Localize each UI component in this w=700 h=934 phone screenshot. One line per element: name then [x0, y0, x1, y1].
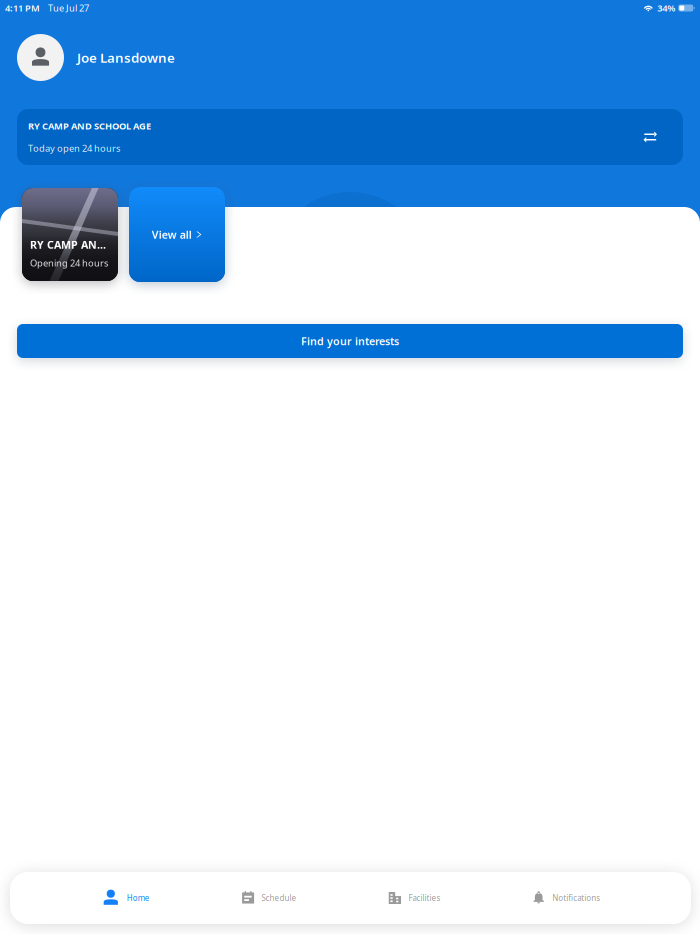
- button[interactable]: Schedule: [241, 872, 297, 924]
- staticText: Facilities: [408, 893, 440, 903]
- staticText: Find your interests: [301, 334, 399, 348]
- staticText: Tue Jul 27: [48, 2, 89, 14]
- button[interactable]: Facilities: [387, 872, 440, 924]
- button[interactable]: Home: [101, 872, 150, 924]
- button[interactable]: RY CAMP AN...: [22, 188, 118, 281]
- staticText: Notifications: [552, 893, 600, 903]
- staticText: Opening 24 hours: [30, 257, 108, 269]
- staticText: RY CAMP AND SCHOOL AGE: [28, 120, 151, 132]
- staticText: Home: [127, 893, 150, 903]
- staticText: RY CAMP AN...: [30, 237, 106, 252]
- staticText: View all: [152, 227, 192, 242]
- button[interactable]: Find your interests: [17, 324, 683, 358]
- button[interactable]: Joe Lansdowne: [0, 34, 700, 81]
- staticText: Today open 24 hours: [28, 142, 120, 154]
- staticText: 4:11 PM: [5, 2, 40, 14]
- staticText: Joe Lansdowne: [77, 49, 175, 66]
- button[interactable]: Notifications: [531, 872, 600, 924]
- staticText: Schedule: [262, 893, 297, 903]
- staticText: 34%: [657, 2, 675, 14]
- button[interactable]: View all: [129, 187, 225, 282]
- button[interactable]: RY CAMP AND SCHOOL AGE: [17, 109, 683, 165]
